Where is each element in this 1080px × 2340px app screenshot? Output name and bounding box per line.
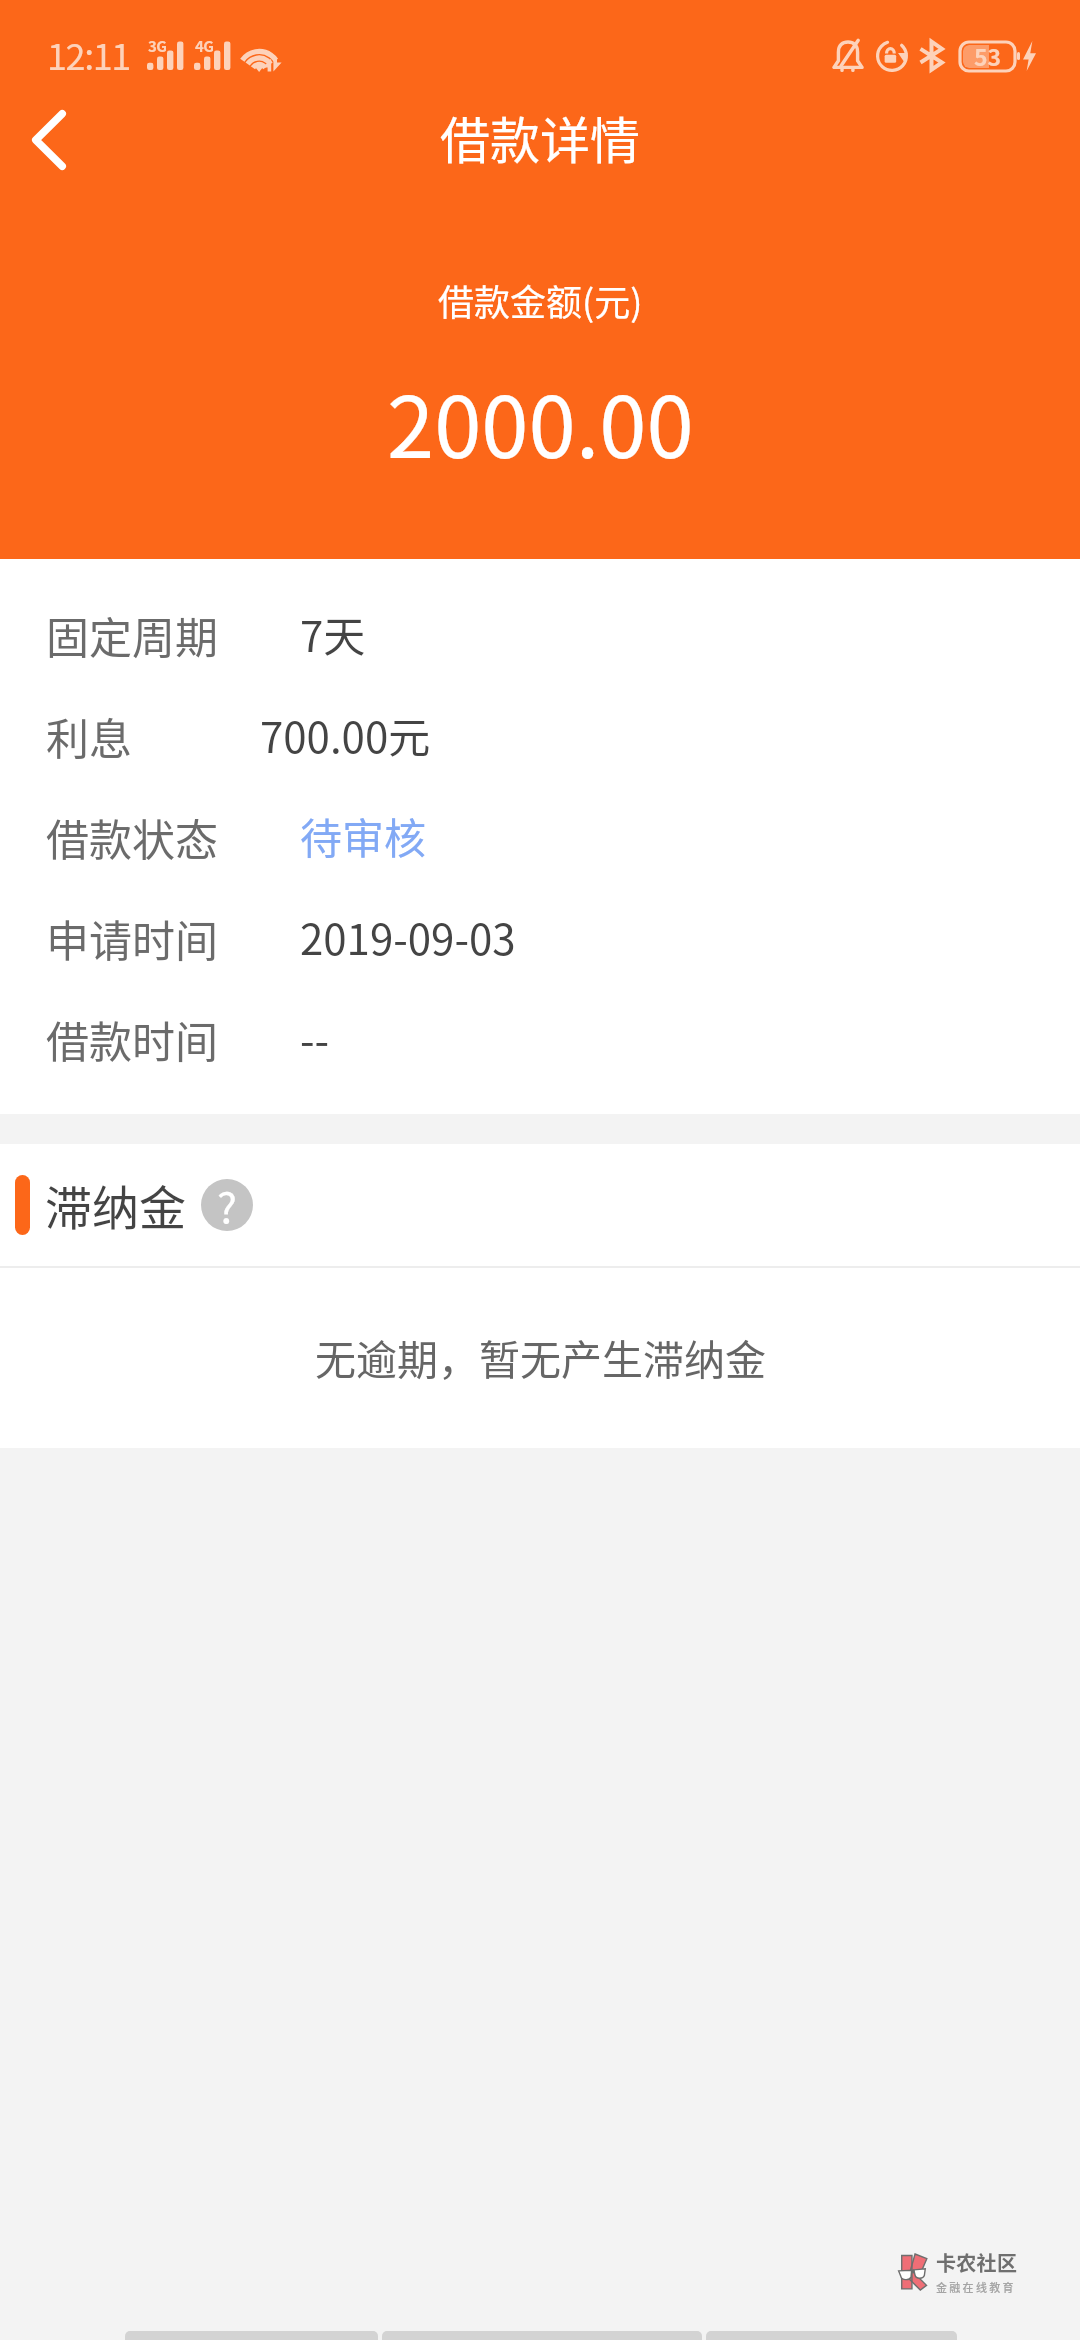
staticText: 卡农社区 bbox=[936, 2249, 1018, 2276]
staticText: 700.00元 bbox=[260, 708, 431, 765]
staticText: 借款金额(元) bbox=[438, 277, 643, 326]
staticText: 53 bbox=[974, 41, 1002, 70]
button[interactable]: 借款状态 bbox=[0, 787, 1080, 888]
button[interactable]: 固定周期 bbox=[0, 585, 1080, 686]
staticText: 待审核 bbox=[300, 809, 427, 866]
staticText: 借款状态 bbox=[46, 809, 300, 867]
staticText: 申请时间 bbox=[46, 910, 300, 968]
button[interactable]: 利息 bbox=[0, 686, 1080, 787]
staticText: 4G bbox=[195, 36, 214, 56]
staticText: 借款详情 bbox=[440, 105, 640, 172]
staticText: 借款时间 bbox=[46, 1011, 300, 1069]
staticText: 3G bbox=[148, 36, 167, 56]
staticText: -- bbox=[300, 1011, 330, 1068]
staticText: ? bbox=[217, 1179, 237, 1230]
staticText: 固定周期 bbox=[46, 607, 300, 665]
button[interactable]: Back bbox=[8, 99, 90, 181]
staticText: 无逾期，暂无产生滞纳金 bbox=[315, 1331, 766, 1386]
staticText: 利息 bbox=[46, 708, 260, 766]
staticText: 12:11 bbox=[47, 31, 130, 80]
staticText: 7天 bbox=[300, 607, 366, 664]
staticText: 2019-09-03 bbox=[300, 910, 516, 967]
button[interactable]: 借款时间 bbox=[0, 989, 1080, 1090]
staticText: 金融在线教育 bbox=[936, 2280, 1016, 2295]
button[interactable]: What is a late fee bbox=[201, 1179, 253, 1231]
button[interactable]: 申请时间 bbox=[0, 888, 1080, 989]
staticText: 2000.00 bbox=[387, 366, 694, 481]
staticText: 滞纳金 bbox=[45, 1174, 186, 1237]
